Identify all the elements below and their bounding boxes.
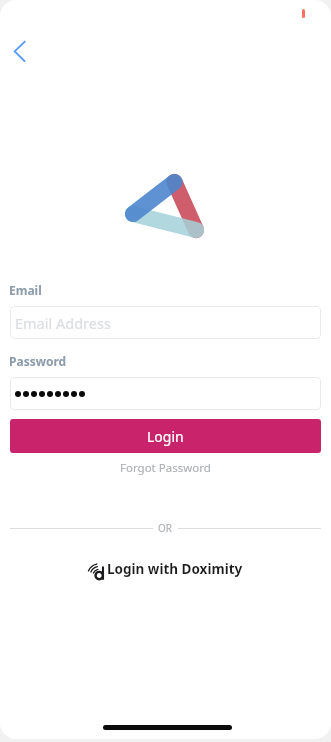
button[interactable]: Back xyxy=(0,31,40,71)
staticText: Forgot Password xyxy=(120,460,211,476)
button[interactable] xyxy=(10,377,321,410)
staticText: OR xyxy=(158,521,173,535)
button[interactable]: Login with Doximity xyxy=(86,557,243,581)
staticText: Login xyxy=(147,427,184,446)
button[interactable]: Email Address xyxy=(10,306,321,339)
staticText: Password xyxy=(9,353,67,369)
staticText: Email xyxy=(9,282,42,298)
staticText: Email Address xyxy=(15,313,111,333)
button[interactable]: Login xyxy=(10,419,321,453)
button[interactable]: Forgot Password xyxy=(0,459,331,477)
staticText: Login with Doximity xyxy=(107,560,243,578)
